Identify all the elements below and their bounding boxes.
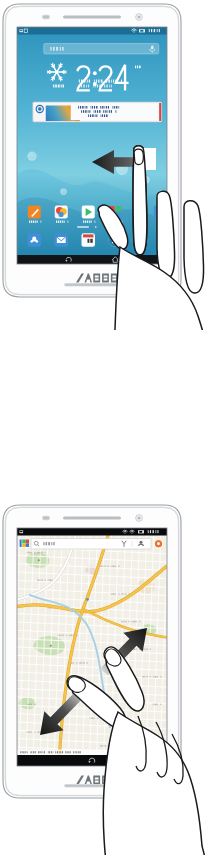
button[interactable]: ASUS tablet gesture illustrations bbox=[0, 0, 216, 855]
